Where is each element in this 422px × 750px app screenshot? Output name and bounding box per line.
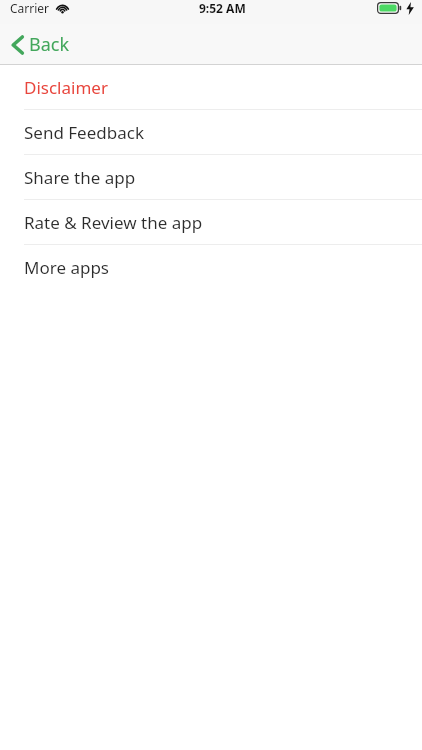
staticText: 9:52 AM [199, 0, 246, 16]
staticText: Share the app [24, 166, 136, 189]
staticText: More apps [24, 256, 109, 279]
staticText: Back [29, 32, 70, 57]
staticText: Carrier [10, 0, 50, 16]
staticText: Rate & Review the app [24, 211, 203, 234]
staticText: Send Feedback [24, 121, 144, 144]
button[interactable]: Rate & Review the app [0, 200, 422, 245]
button[interactable]: Back [0, 28, 84, 61]
button[interactable]: Disclaimer [0, 65, 422, 110]
staticText: Disclaimer [24, 76, 108, 99]
button[interactable]: More apps [0, 245, 422, 290]
button[interactable]: Send Feedback [0, 110, 422, 155]
button[interactable]: Share the app [0, 155, 422, 200]
